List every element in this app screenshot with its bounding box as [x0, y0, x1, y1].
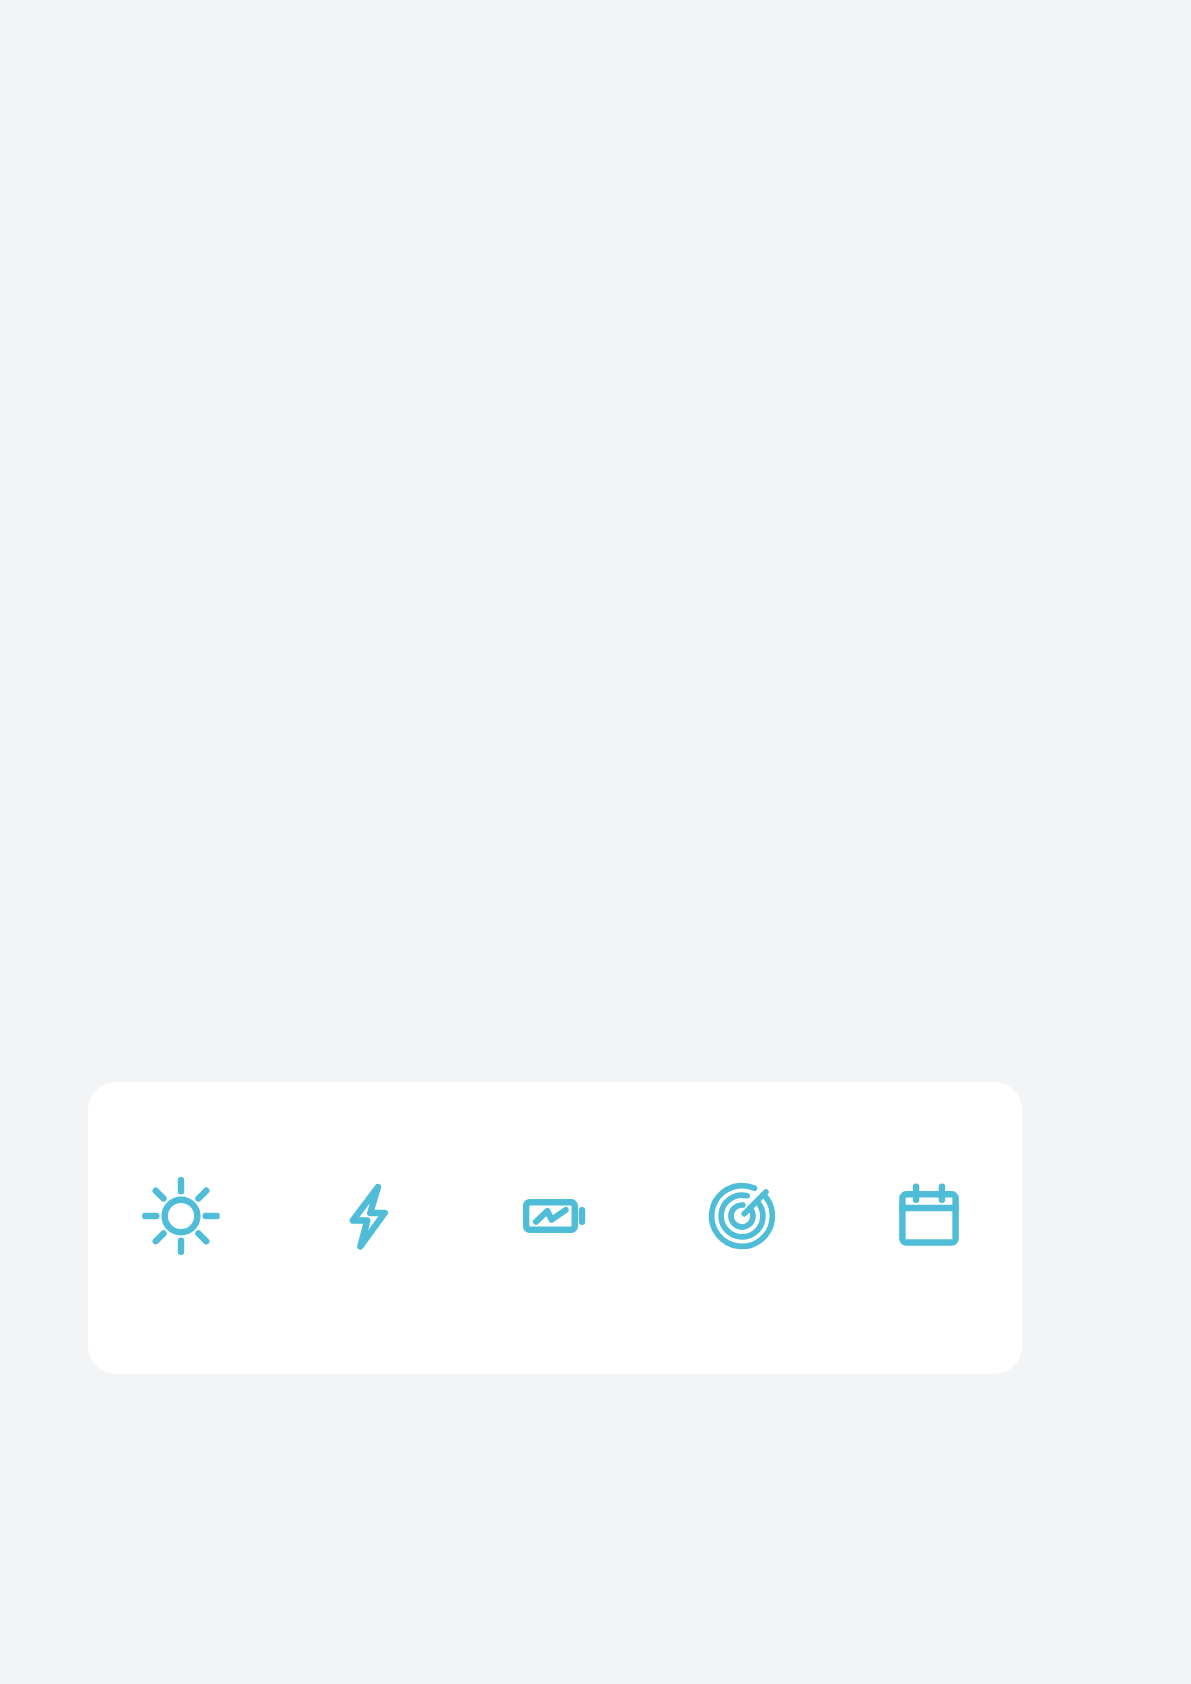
- button[interactable]: Battery charging: [461, 1156, 648, 1276]
- button[interactable]: Calendar: [835, 1156, 1022, 1276]
- button[interactable]: Radar: [648, 1156, 835, 1276]
- button[interactable]: Power: [274, 1156, 461, 1276]
- button[interactable]: Brightness: [88, 1156, 274, 1276]
